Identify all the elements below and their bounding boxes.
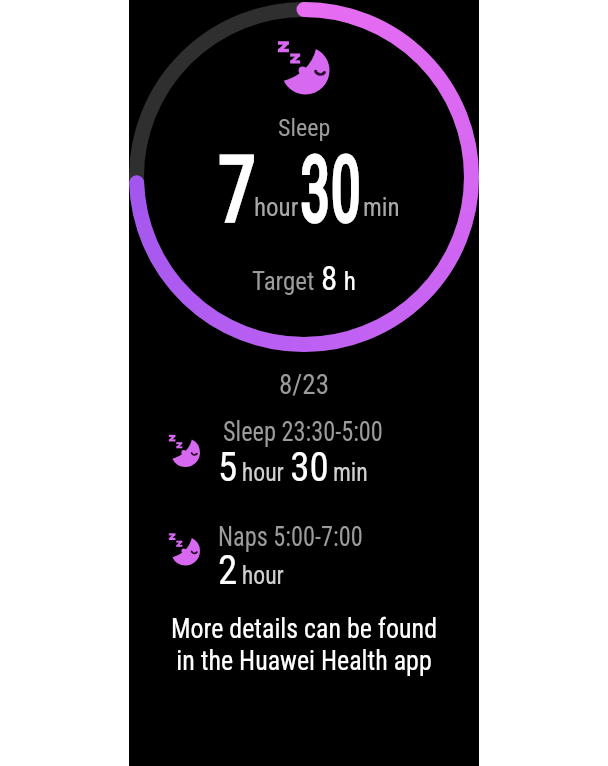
staticText: min [333, 458, 368, 487]
staticText: More details can be found in the Huawei … [171, 613, 437, 677]
staticText: hour [254, 193, 299, 222]
button[interactable] [164, 610, 444, 682]
button[interactable] [159, 408, 444, 496]
staticText: Target [252, 267, 321, 296]
staticText: Sleep 23:30-5:00 [223, 416, 383, 448]
staticText: 8/23 [279, 369, 330, 401]
staticText: hour [242, 561, 285, 590]
staticText: h [338, 267, 356, 296]
button[interactable] [159, 512, 444, 600]
staticText: 30 [300, 137, 361, 244]
staticText: 2 [218, 546, 238, 594]
staticText: 5 [218, 443, 238, 491]
staticText: 30 [300, 137, 361, 244]
staticText: Naps 5:00-7:00 [218, 521, 363, 553]
staticText: hour [242, 458, 285, 487]
staticText: 7 [218, 137, 256, 244]
staticText: 8 [321, 259, 338, 298]
staticText: 7 [218, 137, 256, 244]
staticText: min [363, 193, 400, 222]
staticText: 30 [290, 443, 329, 491]
staticText: Sleep [278, 114, 331, 142]
